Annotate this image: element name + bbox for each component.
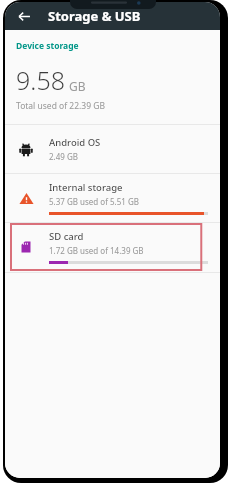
- staticText: 1.72 GB used of 14.39 GB: [49, 245, 144, 256]
- staticText: 5.37 GB used of 5.51 GB: [49, 196, 139, 207]
- button[interactable]: Internal storage: [5, 174, 220, 222]
- button[interactable]: Back: [13, 5, 35, 27]
- staticText: 2.49 GB: [49, 151, 78, 162]
- staticText: GB: [69, 78, 86, 94]
- staticText: 9.58: [16, 63, 65, 97]
- staticText: Internal storage: [49, 181, 123, 194]
- button[interactable]: SD card: [5, 223, 220, 271]
- staticText: SD card: [49, 230, 84, 243]
- staticText: Device storage: [16, 40, 79, 52]
- staticText: Android OS: [49, 136, 101, 149]
- staticText: Storage & USB: [48, 7, 141, 25]
- staticText: Total used of 22.39 GB: [16, 100, 105, 112]
- button[interactable]: Android OS: [5, 125, 220, 173]
